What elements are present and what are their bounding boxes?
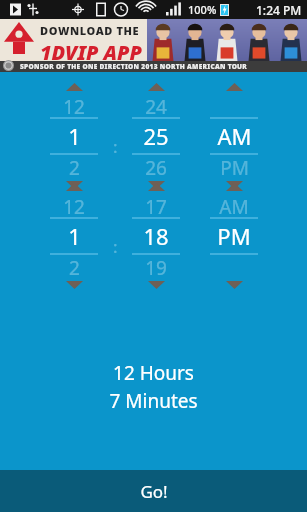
staticText: PM xyxy=(217,221,251,251)
staticText: 26 xyxy=(145,155,167,178)
staticText: AM xyxy=(219,194,249,217)
button[interactable]: 25 xyxy=(128,119,184,153)
button[interactable]: PM xyxy=(206,219,262,253)
button[interactable]: Decrease minute xyxy=(128,178,184,192)
staticText: AM xyxy=(217,121,252,151)
button[interactable]: Increase minute xyxy=(128,80,184,94)
staticText: 18 xyxy=(143,221,169,251)
staticText: 100% xyxy=(188,2,217,17)
button[interactable]: AM xyxy=(206,119,262,153)
staticText: 7 Minutes xyxy=(109,388,198,414)
staticText: 1 xyxy=(68,121,81,151)
staticText: PM xyxy=(220,155,249,178)
staticText: 17 xyxy=(145,194,167,217)
button[interactable]: Increase hour xyxy=(46,80,102,94)
staticText: DOWNLOAD THE xyxy=(40,23,140,38)
staticText: Go! xyxy=(140,480,168,503)
staticText: SPONSOR OF THE ONE DIRECTION 2013 NORTH … xyxy=(20,62,248,71)
button[interactable]: Advertisement: Download the 1D VIP App xyxy=(0,19,307,72)
staticText: : xyxy=(113,235,118,258)
staticText: 24 xyxy=(145,94,167,117)
button[interactable]: Increase hour xyxy=(46,180,102,194)
button[interactable]: 1 xyxy=(46,219,102,253)
staticText: 1:24 PM xyxy=(256,2,302,18)
staticText: 12 Hours xyxy=(113,360,194,386)
staticText: 12 xyxy=(63,94,85,117)
button[interactable]: 1 xyxy=(46,119,102,153)
button[interactable]: Go! xyxy=(0,470,307,512)
staticText: 2 xyxy=(69,155,80,178)
button[interactable]: Decrease hour xyxy=(46,278,102,292)
button[interactable]: Increase minute xyxy=(128,180,184,194)
button[interactable]: Decrease minute xyxy=(128,278,184,292)
button[interactable]: Decrease hour xyxy=(46,178,102,192)
staticText: 12 xyxy=(63,194,85,217)
staticText: 19 xyxy=(145,255,167,278)
button[interactable]: Increase AM or PM xyxy=(206,180,262,194)
button[interactable]: Increase AM or PM xyxy=(206,80,262,94)
staticText: 1 xyxy=(68,221,81,251)
staticText: 2 xyxy=(69,255,80,278)
button[interactable]: Decrease AM or PM xyxy=(206,278,262,292)
button[interactable]: 18 xyxy=(128,219,184,253)
staticText: 25 xyxy=(143,121,169,151)
staticText: 1DVIP APP xyxy=(40,39,143,66)
staticText: : xyxy=(113,135,118,158)
button[interactable]: Decrease AM or PM xyxy=(206,178,262,192)
